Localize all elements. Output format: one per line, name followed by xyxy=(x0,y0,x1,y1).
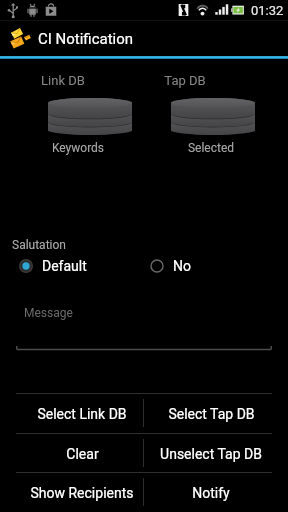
button[interactable]: Default xyxy=(19,256,87,275)
staticText: 01:32 xyxy=(251,3,284,18)
staticText: Select Tap DB xyxy=(168,406,255,422)
button[interactable]: CI Notification xyxy=(0,21,288,57)
staticText: Link DB xyxy=(28,73,98,88)
staticText: Default xyxy=(42,258,87,274)
staticText: Message xyxy=(24,306,73,320)
button[interactable]: Unselect Tap DB xyxy=(148,434,274,473)
staticText: Keywords xyxy=(43,141,113,155)
staticText: Tap DB xyxy=(150,73,220,88)
button[interactable]: Clear xyxy=(19,434,145,473)
button[interactable]: Notify xyxy=(148,473,274,512)
staticText: No xyxy=(173,258,191,274)
staticText: Clear xyxy=(66,446,99,462)
staticText: Salutation xyxy=(12,238,66,252)
button[interactable]: Link DB xyxy=(48,98,132,135)
staticText: CI Notification xyxy=(38,30,134,48)
button[interactable]: Message xyxy=(16,300,272,350)
button[interactable]: No xyxy=(150,256,191,275)
button[interactable]: Select Tap DB xyxy=(148,394,274,433)
button[interactable]: Select Link DB xyxy=(19,394,145,433)
staticText: Select Link DB xyxy=(37,406,127,422)
button[interactable]: Tap DB xyxy=(171,98,255,135)
button[interactable]: Show Recipients xyxy=(19,473,145,512)
staticText: Selected xyxy=(176,141,246,155)
staticText: Unselect Tap DB xyxy=(160,446,262,462)
staticText: Notify xyxy=(192,485,230,501)
staticText: Show Recipients xyxy=(30,485,134,501)
